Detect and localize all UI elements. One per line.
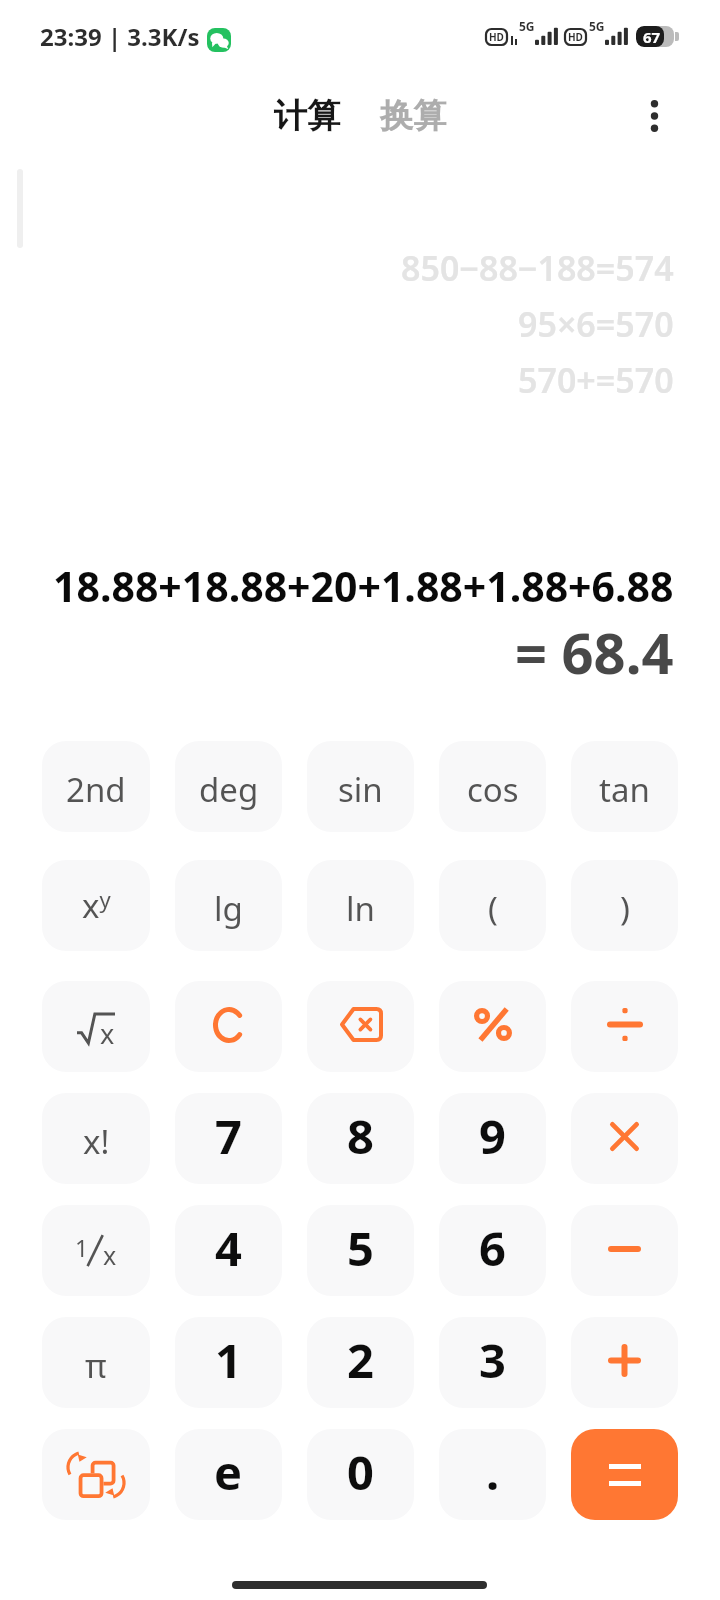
button[interactable]: 6 [439, 1205, 546, 1296]
button[interactable]: 2 [307, 1317, 414, 1408]
staticText: 2nd [66, 767, 126, 812]
button[interactable]: 4 [175, 1205, 282, 1296]
staticText: 0 [347, 1440, 374, 1504]
staticText: xy [82, 883, 111, 928]
button[interactable]: Backspace [307, 981, 414, 1072]
staticText: . [486, 1440, 500, 1504]
staticText: 2 [347, 1328, 374, 1392]
button[interactable]: Multiply [571, 1093, 678, 1184]
staticText: ( [488, 886, 498, 931]
button[interactable]: 0 [307, 1429, 414, 1520]
staticText: HD [568, 30, 583, 44]
staticText: 23:39 | 3.3K/s [40, 20, 200, 53]
staticText: x [100, 1015, 115, 1045]
staticText: deg [199, 767, 259, 812]
staticText: ln [346, 886, 375, 931]
staticText: 5G [519, 18, 535, 34]
staticText: x [103, 1238, 117, 1272]
button[interactable]: ln [307, 860, 414, 951]
staticText: x! [83, 1119, 110, 1164]
staticText: HD [489, 30, 504, 44]
button[interactable]: x! [42, 1093, 150, 1184]
button[interactable]: 2nd [42, 741, 150, 832]
staticText: 5G [589, 18, 605, 34]
button[interactable]: π [42, 1317, 150, 1408]
button[interactable]: More options [632, 94, 676, 138]
button[interactable]: cos [439, 741, 546, 832]
staticText: sin [338, 767, 383, 812]
staticText: 67 [643, 27, 661, 47]
staticText: cos [467, 767, 519, 812]
staticText: π [85, 1343, 107, 1388]
staticText: 850−88−188=574 [401, 245, 674, 291]
staticText: 5 [347, 1216, 374, 1280]
button[interactable]: 9 [439, 1093, 546, 1184]
staticText: 570+=570 [518, 357, 674, 403]
staticText: 95×6=570 [518, 301, 674, 347]
button[interactable]: 3 [439, 1317, 546, 1408]
button[interactable]: 5 [307, 1205, 414, 1296]
staticText: lg [214, 886, 243, 931]
staticText: = 68.4 [515, 614, 674, 690]
button[interactable]: Equals [571, 1429, 678, 1520]
button[interactable]: 计算 [268, 85, 346, 147]
staticText: 18.88+18.88+20+1.88+1.88+6.88 [53, 558, 674, 614]
staticText: tan [599, 767, 650, 812]
button[interactable]: Minus [571, 1205, 678, 1296]
staticText: 8 [347, 1104, 374, 1168]
button[interactable]: ( [439, 860, 546, 951]
button[interactable]: 1 [42, 1205, 150, 1296]
staticText: e [214, 1440, 243, 1504]
staticText: ) [620, 886, 630, 931]
button[interactable] [439, 981, 546, 1072]
button[interactable]: xy [42, 860, 150, 951]
button[interactable]: 7 [175, 1093, 282, 1184]
button[interactable]: 8 [307, 1093, 414, 1184]
button[interactable]: Plus [571, 1317, 678, 1408]
button[interactable]: Square root [42, 981, 150, 1072]
button[interactable]: Unit converter [42, 1429, 150, 1520]
staticText: 4 [215, 1216, 242, 1280]
button[interactable]: tan [571, 741, 678, 832]
button[interactable]: deg [175, 741, 282, 832]
button[interactable]: sin [307, 741, 414, 832]
button[interactable]: 1 [175, 1317, 282, 1408]
button[interactable]: e [175, 1429, 282, 1520]
button[interactable]: Clear [175, 981, 282, 1072]
staticText: 计算 [274, 95, 340, 137]
button[interactable]: Divide [571, 981, 678, 1072]
staticText: 1 [215, 1328, 242, 1392]
staticText: 9 [479, 1104, 506, 1168]
button[interactable]: ) [571, 860, 678, 951]
staticText: 7 [215, 1104, 242, 1168]
staticText: 1 [75, 1232, 89, 1263]
button[interactable]: . [439, 1429, 546, 1520]
button[interactable]: 换算 [374, 85, 452, 147]
staticText: 3 [479, 1328, 506, 1392]
staticText: 6 [479, 1216, 506, 1280]
staticText: 换算 [380, 95, 446, 137]
button[interactable]: lg [175, 860, 282, 951]
